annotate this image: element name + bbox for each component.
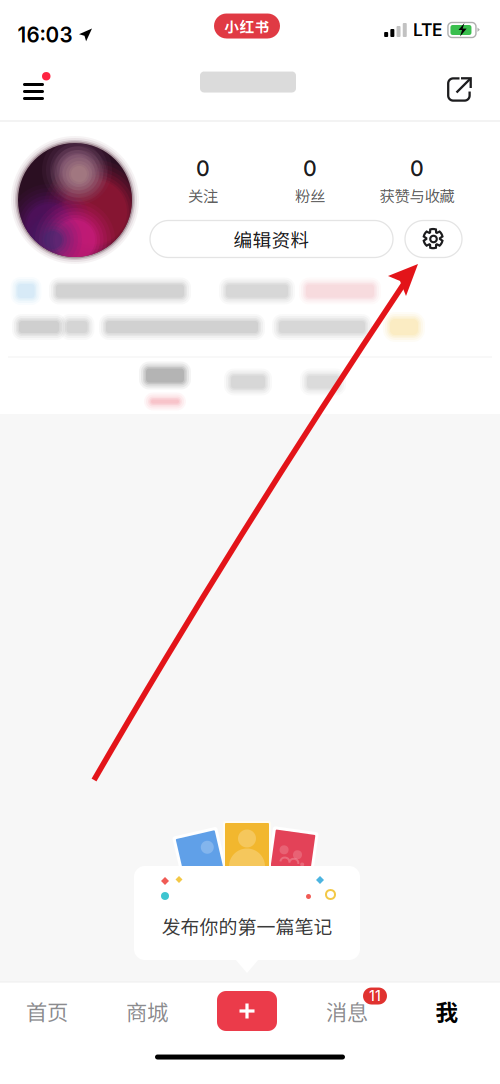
- button[interactable]: Share profile: [437, 68, 481, 112]
- staticText: 我: [435, 995, 458, 1027]
- staticText: 0: [410, 155, 424, 181]
- button[interactable]: 0: [256, 154, 363, 208]
- button[interactable]: Settings: [405, 220, 462, 257]
- button[interactable]: Create post: [197, 986, 297, 1036]
- button[interactable]: 首页: [0, 986, 97, 1036]
- button[interactable]: 编辑资料: [150, 220, 393, 257]
- staticText: LTE: [413, 19, 442, 40]
- button[interactable]: [285, 357, 361, 407]
- staticText: 0: [196, 155, 210, 181]
- button[interactable]: 0: [363, 154, 470, 208]
- staticText: 0: [303, 155, 317, 181]
- button[interactable]: Menu: [14, 64, 60, 108]
- staticText: 粉丝: [295, 184, 325, 206]
- staticText: 商城: [126, 996, 168, 1026]
- button[interactable]: 商城: [97, 986, 197, 1036]
- staticText: 获赞与收藏: [379, 184, 454, 206]
- staticText: 发布你的第一篇笔记: [161, 912, 332, 939]
- staticText: 首页: [26, 996, 68, 1026]
- staticText: 关注: [188, 184, 218, 206]
- button[interactable]: 0: [149, 154, 256, 208]
- button[interactable]: 我: [397, 986, 497, 1036]
- staticText: 小红书: [224, 15, 269, 37]
- staticText: 编辑资料: [233, 225, 309, 252]
- button[interactable]: 消息: [297, 986, 397, 1036]
- staticText: 16:03: [17, 22, 72, 47]
- button[interactable]: [127, 361, 203, 411]
- button[interactable]: [210, 357, 286, 407]
- staticText: 11: [369, 987, 381, 1004]
- staticText: 消息: [326, 996, 368, 1026]
